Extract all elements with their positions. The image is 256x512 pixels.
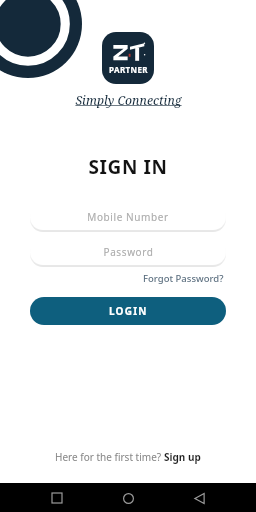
- staticText: Sign up: [164, 450, 201, 464]
- button[interactable]: Password: [30, 239, 226, 265]
- button[interactable]: Back: [185, 484, 213, 512]
- staticText: Mobile Number: [87, 210, 169, 224]
- staticText: LOGIN: [109, 304, 148, 318]
- staticText: SIGN IN: [88, 154, 168, 180]
- staticText: Simply Connecting: [75, 92, 182, 108]
- button[interactable]: Here for the first time?: [49, 447, 207, 467]
- staticText: Password: [103, 245, 154, 259]
- button[interactable]: Mobile Number: [30, 204, 226, 230]
- button[interactable]: Recent apps: [43, 484, 71, 512]
- staticText: Here for the first time?: [55, 450, 164, 464]
- button[interactable]: Forgot Password?: [141, 270, 226, 287]
- button[interactable]: Home: [114, 484, 142, 512]
- staticText: Forgot Password?: [143, 272, 224, 285]
- other: ZT Partner logo: [102, 32, 154, 84]
- staticText: PARTNER: [109, 64, 148, 75]
- button[interactable]: LOGIN: [30, 297, 226, 325]
